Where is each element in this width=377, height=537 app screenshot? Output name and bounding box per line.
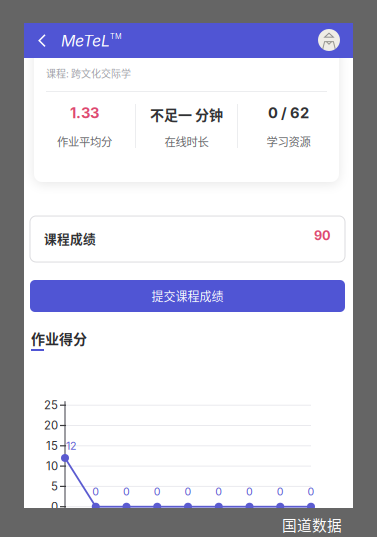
staticText: 作业得分 [31,328,87,348]
staticText: 1.33 [70,104,99,122]
staticText: 10 [46,459,58,473]
staticText: 0 [123,485,130,498]
staticText: 作业平均分 [57,133,112,149]
staticText: 0 [154,485,161,498]
staticText: 不足一 分钟 [150,104,223,124]
staticText: 0 / 62 [268,104,309,122]
staticText: 学习资源 [266,133,310,149]
staticText: 课程: 跨文化交际学 [46,66,131,80]
staticText: 15 [46,439,58,453]
staticText: 0 [307,485,314,498]
button[interactable]: 课程成绩 [30,216,345,262]
button[interactable]: Back [38,34,47,47]
staticText: 0 [277,485,284,498]
staticText: 提交课程成绩 [151,287,223,305]
button[interactable]: Profile [318,29,340,51]
staticText: 12 [66,439,77,452]
staticText: 0 [215,485,222,498]
staticText: 20 [44,419,58,432]
staticText: 25 [44,398,58,412]
staticText: MeTeL [61,31,110,50]
staticText: 0 [184,485,191,498]
staticText: 0 [246,485,253,498]
staticText: 5 [51,479,58,493]
staticText: 课程成绩 [44,229,96,247]
staticText: TM [110,32,122,41]
staticText: 0 [92,485,99,498]
staticText: 国道数据 [282,514,342,535]
staticText: 0 [51,500,58,513]
staticText: 在线时长 [164,133,208,149]
button[interactable]: 提交课程成绩 [30,280,345,312]
staticText: 90 [314,228,331,243]
